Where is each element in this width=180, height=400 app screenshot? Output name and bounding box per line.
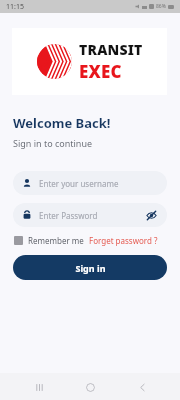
staticText: Enter Password xyxy=(39,210,144,221)
staticText: Welcome Back! xyxy=(13,114,111,132)
staticText: 86% xyxy=(156,3,166,10)
button[interactable]: Enter Password xyxy=(13,203,167,227)
button[interactable]: Home xyxy=(77,374,103,400)
button[interactable]: Forget password ? xyxy=(89,235,158,246)
button[interactable]: Back xyxy=(129,374,155,400)
staticText: EXEC xyxy=(79,60,122,83)
staticText: Remember me xyxy=(28,235,84,246)
button[interactable]: Enter your username xyxy=(13,171,167,195)
staticText: Sign in xyxy=(75,262,106,274)
staticText: Forget password ? xyxy=(89,235,158,246)
button[interactable]: Recents xyxy=(26,374,52,400)
staticText: Sign in to continue xyxy=(13,137,93,149)
button[interactable]: Show password xyxy=(144,208,158,222)
staticText: 11:15 xyxy=(6,2,24,12)
button[interactable]: Sign in xyxy=(13,255,167,280)
staticText: TRANSIT xyxy=(79,40,143,59)
button[interactable]: Remember me xyxy=(14,235,84,246)
staticText: Enter your username xyxy=(39,178,158,189)
